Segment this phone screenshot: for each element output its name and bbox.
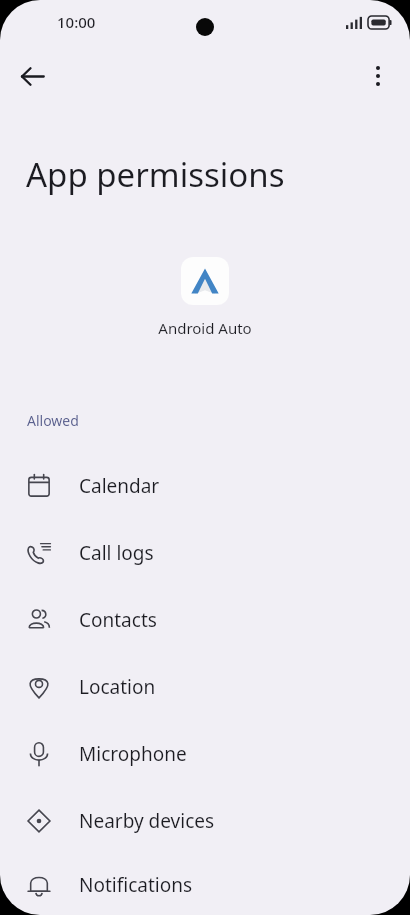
- button[interactable]: Back: [8, 52, 56, 100]
- button[interactable]: Notifications: [0, 854, 410, 915]
- button[interactable]: Contacts: [0, 586, 410, 653]
- button[interactable]: Calendar: [0, 452, 410, 519]
- staticText: Notifications: [79, 872, 193, 898]
- staticText: App permissions: [26, 152, 386, 197]
- staticText: Nearby devices: [79, 808, 215, 834]
- button[interactable]: More options: [354, 52, 402, 100]
- staticText: Contacts: [79, 607, 157, 633]
- staticText: Microphone: [79, 741, 187, 767]
- staticText: Location: [79, 674, 156, 700]
- staticText: Allowed: [27, 411, 410, 430]
- button[interactable]: Call logs: [0, 519, 410, 586]
- staticText: 10:00: [57, 12, 96, 32]
- button[interactable]: Location: [0, 653, 410, 720]
- button[interactable]: Nearby devices: [0, 787, 410, 854]
- button[interactable]: Microphone: [0, 720, 410, 787]
- staticText: Android Auto: [158, 318, 252, 338]
- staticText: Calendar: [79, 473, 160, 499]
- staticText: Call logs: [79, 540, 154, 566]
